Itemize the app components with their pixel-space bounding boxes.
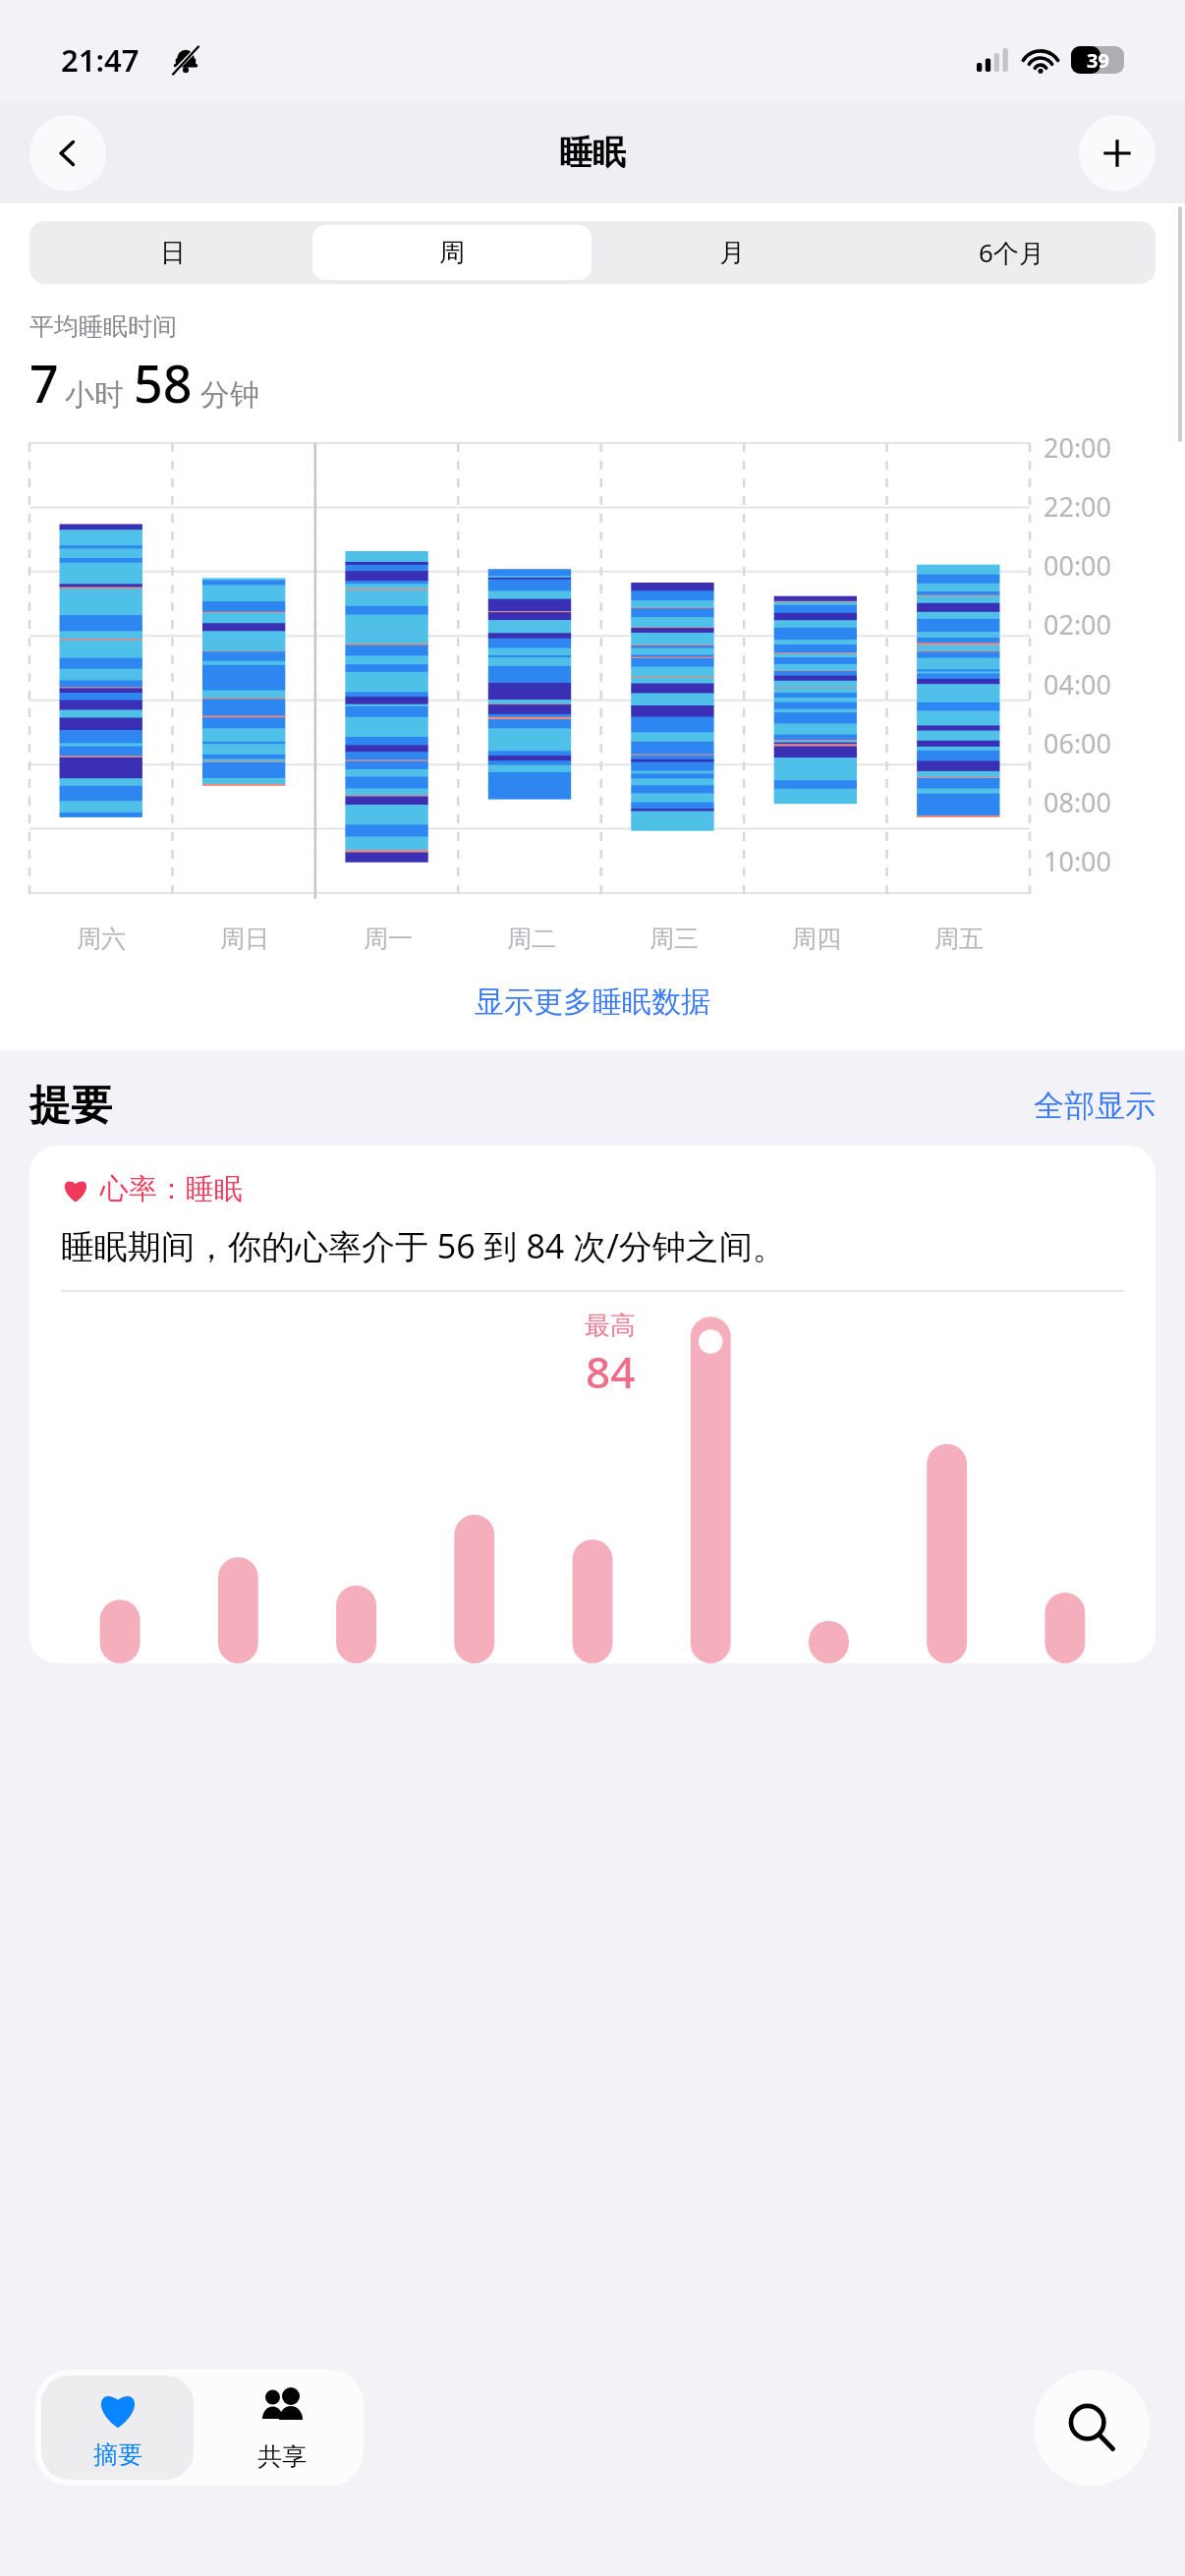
button[interactable]: 显示更多睡眠数据	[0, 976, 1185, 1029]
staticText: 显示更多睡眠数据	[475, 983, 710, 1021]
staticText: 58	[134, 348, 193, 418]
staticText: 84	[586, 1342, 636, 1401]
staticText: 周	[439, 237, 465, 269]
staticText: 10:00	[1044, 843, 1112, 879]
button[interactable]: 日	[33, 225, 312, 280]
button[interactable]: Add	[1079, 115, 1156, 192]
button[interactable]: 全部显示	[1034, 1087, 1156, 1125]
staticText: 39	[1087, 47, 1109, 74]
button[interactable]: 共享	[199, 2370, 364, 2486]
button[interactable]: 心率：睡眠	[29, 1146, 1156, 1663]
staticText: 02:00	[1044, 606, 1112, 643]
staticText: 最高	[585, 1310, 636, 1342]
staticText: 20:00	[1044, 429, 1112, 466]
staticText: 周日	[220, 924, 269, 954]
staticText: 分钟	[200, 376, 259, 414]
staticText: 睡眠	[559, 132, 626, 174]
button[interactable]: 6个月	[872, 225, 1152, 280]
staticText: 周二	[507, 924, 556, 954]
staticText: 周一	[364, 924, 413, 954]
staticText: 摘要	[93, 2439, 142, 2470]
button[interactable]: 月	[592, 225, 872, 280]
staticText: 心率：睡眠	[100, 1171, 243, 1207]
staticText: 06:00	[1044, 725, 1112, 761]
staticText: 周三	[649, 924, 699, 954]
staticText: 6个月	[979, 235, 1044, 270]
staticText: 周六	[77, 924, 126, 954]
staticText: 平均睡眠时间	[29, 311, 177, 342]
staticText: 周五	[934, 924, 984, 954]
button[interactable]: 摘要	[41, 2376, 194, 2480]
button[interactable]: Back	[29, 115, 106, 192]
staticText: 21:47	[61, 39, 140, 81]
staticText: 全部显示	[1034, 1087, 1156, 1125]
staticText: 小时	[65, 376, 124, 414]
staticText: 提要	[29, 1080, 112, 1132]
staticText: 7	[29, 348, 59, 418]
staticText: 04:00	[1044, 666, 1112, 702]
staticText: 共享	[257, 2441, 307, 2472]
staticText: 22:00	[1044, 488, 1112, 525]
staticText: 月	[719, 237, 745, 269]
staticText: 日	[160, 237, 186, 269]
button[interactable]: Search	[1034, 2370, 1150, 2486]
staticText: 睡眠期间，你的心率介于 56 到 84 次/分钟之间。	[61, 1223, 786, 1268]
staticText: 00:00	[1044, 547, 1112, 584]
staticText: 周四	[792, 924, 841, 954]
staticText: 08:00	[1044, 784, 1112, 820]
button[interactable]: 周	[312, 225, 592, 280]
